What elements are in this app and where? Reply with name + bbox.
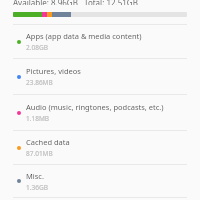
staticText: Apps (app data & media content) (26, 31, 142, 41)
staticText: Cached data (26, 137, 70, 147)
button[interactable]: Misc. (0, 165, 200, 197)
staticText: Available: 8.96GB (13, 0, 78, 5)
staticText: Audio (music, ringtones, podcasts, etc.) (26, 102, 164, 112)
staticText: 1.36GB (26, 183, 48, 192)
staticText: 23.86MB (26, 78, 53, 87)
staticText: Pictures, videos (26, 66, 81, 76)
staticText: Misc. (26, 171, 44, 181)
button[interactable]: Apps (app data & media content) (0, 25, 200, 58)
staticText: 87.01MB (26, 149, 53, 158)
staticText: Total: 12.51GB (84, 0, 138, 5)
button[interactable]: Audio (music, ringtones, podcasts, etc.) (0, 95, 200, 130)
staticText: 2.08GB (26, 43, 48, 52)
button[interactable]: Pictures, videos (0, 59, 200, 94)
staticText: 1.18MB (26, 114, 50, 123)
button[interactable]: Cached data (0, 131, 200, 164)
